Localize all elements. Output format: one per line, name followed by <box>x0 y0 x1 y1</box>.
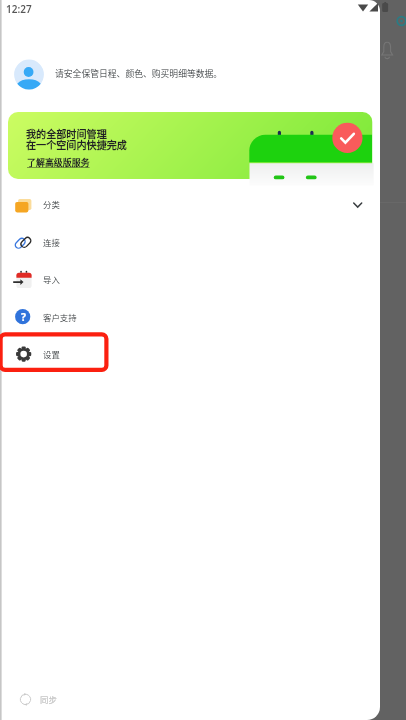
button[interactable]: 导入 <box>0 260 380 297</box>
staticText: 连接 <box>43 236 60 248</box>
staticText: 设置 <box>43 348 60 360</box>
staticText: 12:27 <box>6 2 32 16</box>
button[interactable]: 同步 <box>0 681 380 718</box>
staticText: 分类 <box>43 198 60 210</box>
staticText: 了解高级版服务 <box>27 156 90 169</box>
button[interactable]: 请安全保管日程、颜色、购买明细等数据。 <box>0 52 380 98</box>
staticText: 导入 <box>43 273 60 285</box>
staticText: 请安全保管日程、颜色、购买明细等数据。 <box>55 67 223 80</box>
button[interactable]: 分类 <box>0 185 380 222</box>
staticText: 同步 <box>40 693 57 705</box>
staticText: 客户支持 <box>43 311 77 323</box>
staticText: ? <box>21 310 26 322</box>
button[interactable]: 我的全部时间管理 在一个空间内快捷完成 <box>8 112 373 179</box>
button[interactable]: 客户支持 <box>0 298 380 335</box>
button[interactable]: 设置 <box>0 335 380 372</box>
staticText: 我的全部时间管理 在一个空间内快捷完成 <box>26 126 127 152</box>
button[interactable]: 连接 <box>0 223 380 260</box>
